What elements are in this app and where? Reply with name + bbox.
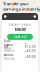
staticText: Tip [4, 45, 8, 49]
staticText: Cash out [13, 35, 26, 39]
staticText: Monday [4, 57, 14, 60]
staticText: Bonus [4, 53, 13, 57]
staticText: Available balance [8, 23, 31, 26]
staticText: Yesterday [4, 49, 15, 56]
staticText: $24.50 [14, 26, 25, 32]
staticText: Today [4, 47, 11, 50]
staticText: +$9.00 [25, 55, 36, 59]
staticText: earnings instantly [3, 6, 40, 12]
staticText: Ride payout [4, 39, 13, 47]
button[interactable]: Cash out [7, 34, 33, 40]
staticText: +$3.50 [25, 49, 36, 53]
staticText: Transfer your [3, 1, 29, 6]
staticText: +$12.00 [25, 41, 36, 48]
